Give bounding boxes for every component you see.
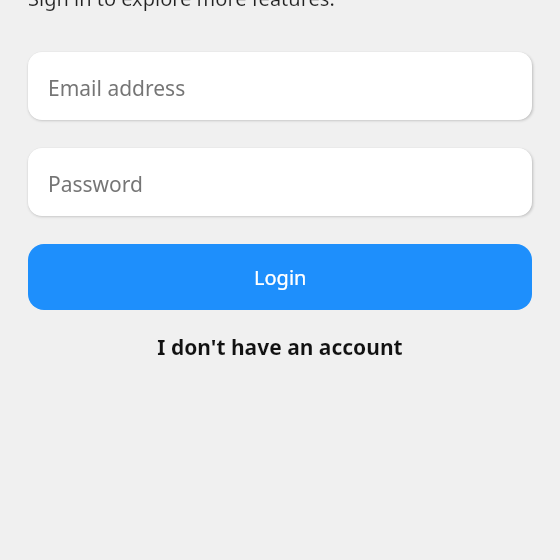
button[interactable]: Email address [28, 52, 532, 120]
staticText: Login [254, 264, 307, 291]
button[interactable]: Password [28, 148, 532, 216]
staticText: Password [48, 170, 143, 199]
button[interactable]: Login [28, 244, 532, 310]
button[interactable]: I don't have an account [0, 333, 560, 362]
staticText: Email address [48, 74, 186, 103]
staticText: Sign in to explore more features. [28, 0, 335, 12]
